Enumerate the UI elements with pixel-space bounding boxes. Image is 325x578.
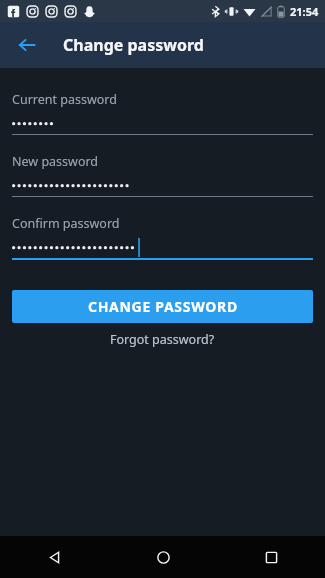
staticText: 21:54 — [290, 4, 319, 19]
staticText: New password — [12, 153, 99, 170]
staticText: Confirm password — [12, 215, 120, 232]
button[interactable]: Current password — [12, 91, 313, 135]
button[interactable]: Forgot password? — [0, 327, 325, 352]
button[interactable]: Confirm password — [12, 215, 313, 260]
button[interactable]: New password — [12, 153, 313, 197]
button[interactable]: Home — [109, 536, 217, 578]
staticText: Change password — [63, 34, 204, 56]
button[interactable]: Back — [0, 536, 109, 578]
button[interactable]: CHANGE PASSWORD — [12, 290, 313, 323]
staticText: CHANGE PASSWORD — [88, 297, 238, 316]
button[interactable]: Back — [6, 24, 48, 66]
staticText: Forgot password? — [110, 331, 215, 348]
staticText: Current password — [12, 91, 117, 108]
button[interactable]: Recent apps — [217, 536, 325, 578]
